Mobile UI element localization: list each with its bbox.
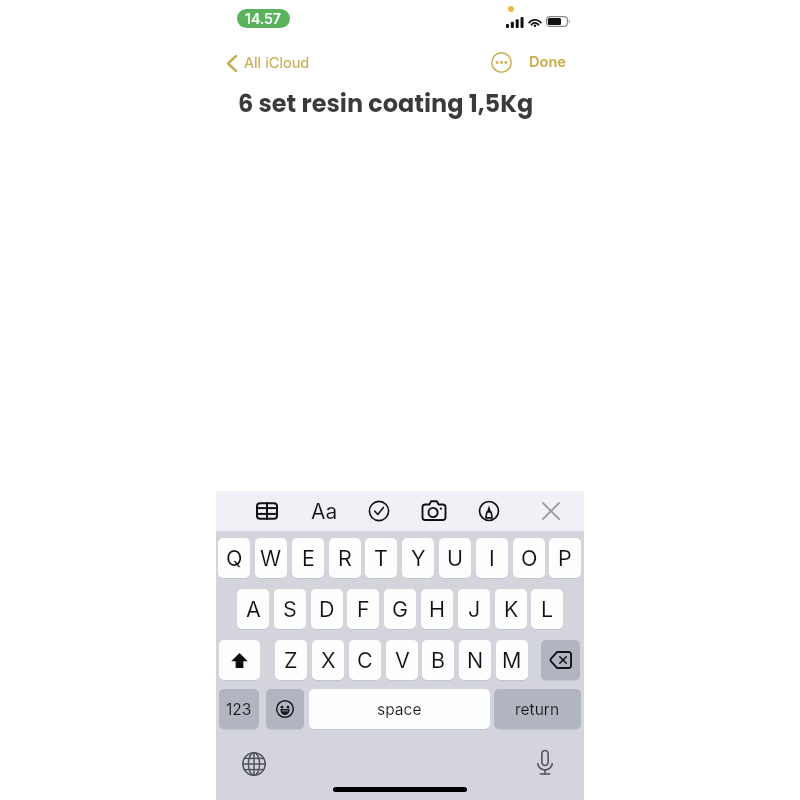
staticText: X [321,647,336,673]
button[interactable]: Done [525,48,570,76]
button[interactable]: J [458,589,490,629]
button[interactable]: Checklist [363,495,395,527]
button[interactable]: G [384,589,416,629]
staticText: Q [226,545,243,571]
button[interactable]: E [292,538,324,578]
staticText: L [541,596,554,622]
staticText: Z [284,647,298,673]
button[interactable]: N [459,640,491,680]
button[interactable]: Y [402,538,434,578]
button[interactable]: Z [275,640,307,680]
button[interactable]: Emoji [266,689,304,729]
staticText: M [502,647,522,673]
staticText: A [246,596,261,622]
staticText: N [467,647,484,673]
button[interactable]: Dictation [529,747,561,779]
button[interactable]: Hide keyboard [535,495,567,527]
button[interactable]: Camera [418,495,450,527]
staticText: return [515,700,560,719]
staticText: J [468,596,481,622]
button[interactable]: U [439,538,471,578]
button[interactable]: B [422,640,454,680]
staticText: E [302,545,315,571]
button[interactable]: Backspace [541,640,580,680]
button[interactable]: Aa [308,495,340,527]
button[interactable]: O [513,538,545,578]
button[interactable]: C [349,640,381,680]
staticText: G [392,596,409,622]
staticText: V [395,647,410,673]
staticText: R [338,545,352,571]
button[interactable]: More options [487,48,515,76]
button[interactable]: R [329,538,361,578]
button[interactable]: H [421,589,453,629]
button[interactable]: All iCloud [221,49,310,77]
button[interactable]: 123 [219,689,259,729]
staticText: Aa [311,499,338,524]
button[interactable]: Markup [473,495,505,527]
staticText: H [429,596,445,622]
button[interactable]: L [531,589,563,629]
staticText: All iCloud [244,54,310,72]
button[interactable]: Q [218,538,250,578]
staticText: 14.57 [245,10,282,27]
button[interactable]: D [311,589,343,629]
staticText: 123 [226,700,252,719]
button[interactable]: T [365,538,397,578]
button[interactable]: A [237,589,269,629]
staticText: 6 set resin coating 1,5Kg [238,87,534,121]
button[interactable]: Insert table [251,495,283,527]
staticText: U [447,545,463,571]
staticText: W [260,545,282,571]
button[interactable]: P [549,538,581,578]
staticText: F [357,596,370,622]
staticText: space [377,700,422,719]
button[interactable]: Shift [219,640,260,680]
button[interactable]: F [347,589,379,629]
staticText: B [431,647,446,673]
staticText: S [283,596,297,622]
staticText: O [521,545,538,571]
button[interactable]: V [386,640,418,680]
button[interactable]: M [496,640,528,680]
staticText: K [504,596,519,622]
button[interactable]: space [309,689,490,729]
staticText: I [489,545,495,571]
staticText: D [319,596,335,622]
staticText: Y [411,545,426,571]
button[interactable]: Switch keyboard [238,748,270,780]
staticText: P [558,545,572,571]
button[interactable]: I [476,538,508,578]
button[interactable]: W [255,538,287,578]
button[interactable]: X [312,640,344,680]
button[interactable]: K [495,589,527,629]
button[interactable]: return [494,689,581,729]
staticText: Done [529,53,566,71]
button[interactable]: S [274,589,306,629]
staticText: C [357,647,373,673]
staticText: T [374,545,388,571]
